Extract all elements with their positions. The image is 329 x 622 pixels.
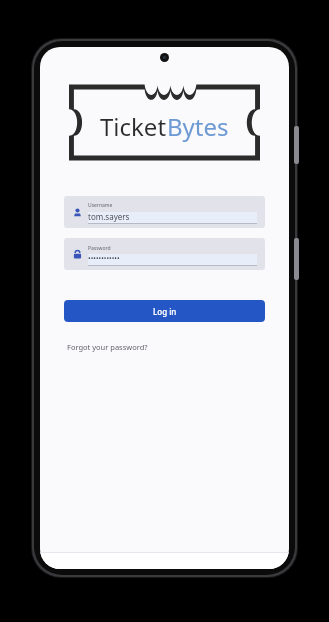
button[interactable]: Forgot your password? xyxy=(66,340,149,354)
staticText: Username xyxy=(88,202,113,209)
staticText: Forgot your password? xyxy=(67,342,148,352)
other: Username xyxy=(73,208,82,217)
staticText: Bytes xyxy=(167,110,229,143)
button[interactable]: Username xyxy=(64,196,265,228)
staticText: Log in xyxy=(153,306,177,317)
button[interactable]: Log in xyxy=(64,300,265,322)
button[interactable]: Password xyxy=(64,238,265,270)
staticText: •••••••••••• xyxy=(88,254,120,264)
staticText: tom.sayers xyxy=(88,211,130,222)
staticText: Password xyxy=(88,245,111,252)
staticText: Ticket xyxy=(100,110,167,143)
other: Password xyxy=(73,250,82,259)
